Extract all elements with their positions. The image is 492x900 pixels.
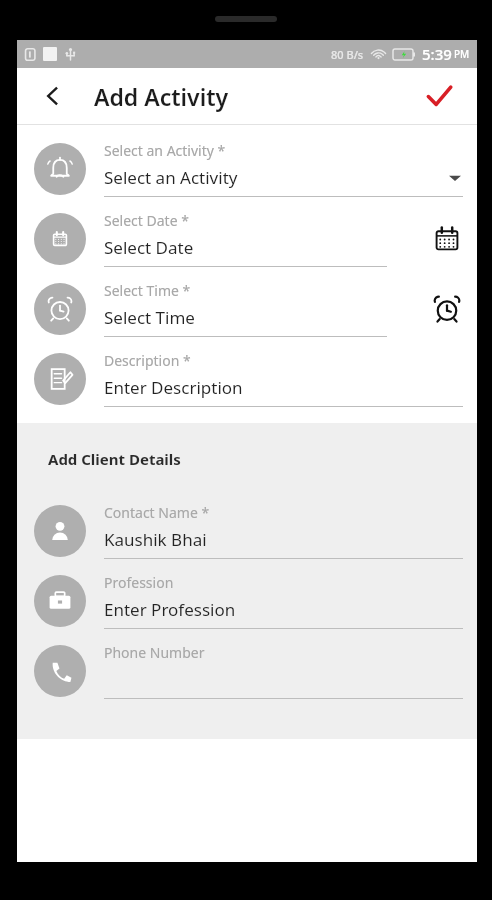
other: Profession [34,575,86,627]
button[interactable]: Pick time [427,289,467,329]
other: Activity [34,143,86,195]
button[interactable]: Date [17,211,477,267]
button[interactable]: Back [35,78,71,114]
other: Description [34,353,86,405]
staticText: Add Activity [94,81,229,112]
staticText: 80 B/s [331,47,364,62]
button[interactable]: Contact name [17,503,477,559]
other: Phone number [34,645,86,697]
other: Contact name [34,505,86,557]
staticText: Enter Profession [104,598,463,621]
staticText: Select Time [104,306,387,329]
button[interactable]: Phone number [17,643,477,699]
staticText: Select Date [104,236,387,259]
button[interactable]: Time [17,281,477,337]
button[interactable]: Activity [17,141,477,197]
staticText: Description * [104,351,191,370]
staticText: Profession [104,573,174,592]
staticText: Enter Description [104,376,463,399]
button[interactable]: Save [419,76,459,116]
button[interactable]: Profession [17,573,477,629]
staticText: Select Time * [104,281,191,300]
staticText: Kaushik Bhai [104,528,463,551]
staticText: Select an Activity [104,166,449,189]
staticText: Contact Name * [104,503,210,522]
staticText: Select an Activity * [104,141,226,160]
staticText: Phone Number [104,643,205,662]
staticText: PM [454,47,470,61]
button[interactable]: Description [17,351,477,407]
staticText: Select Date * [104,211,189,230]
other: Date [34,213,86,265]
other: Time [34,283,86,335]
staticText: Add Client Details [48,449,181,469]
staticText: 5:39 [422,44,452,64]
button[interactable]: Pick date [427,219,467,259]
